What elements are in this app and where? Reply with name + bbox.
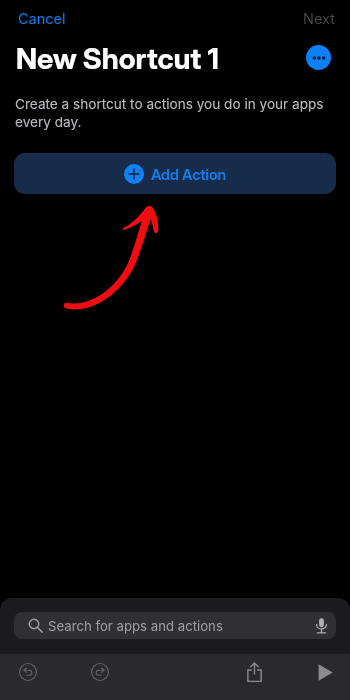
- button[interactable]: Share: [234, 652, 274, 692]
- staticText: Cancel: [18, 10, 66, 28]
- staticText: Create a shortcut to actions you do in y…: [15, 96, 341, 131]
- button[interactable]: More options: [306, 45, 331, 70]
- staticText: Next: [303, 10, 335, 28]
- staticText: New Shortcut 1: [16, 41, 219, 76]
- button[interactable]: Run shortcut: [305, 652, 345, 692]
- button[interactable]: Voice search: [316, 618, 327, 634]
- button[interactable]: Cancel: [4, 5, 80, 33]
- staticText: Search for apps and actions: [48, 618, 223, 634]
- button[interactable]: Add Action: [14, 153, 336, 194]
- button[interactable]: Undo: [8, 652, 48, 692]
- button[interactable]: Redo: [80, 652, 120, 692]
- button[interactable]: Next: [289, 5, 349, 33]
- button[interactable]: Search for apps and actions: [14, 612, 336, 639]
- staticText: Add Action: [151, 165, 227, 183]
